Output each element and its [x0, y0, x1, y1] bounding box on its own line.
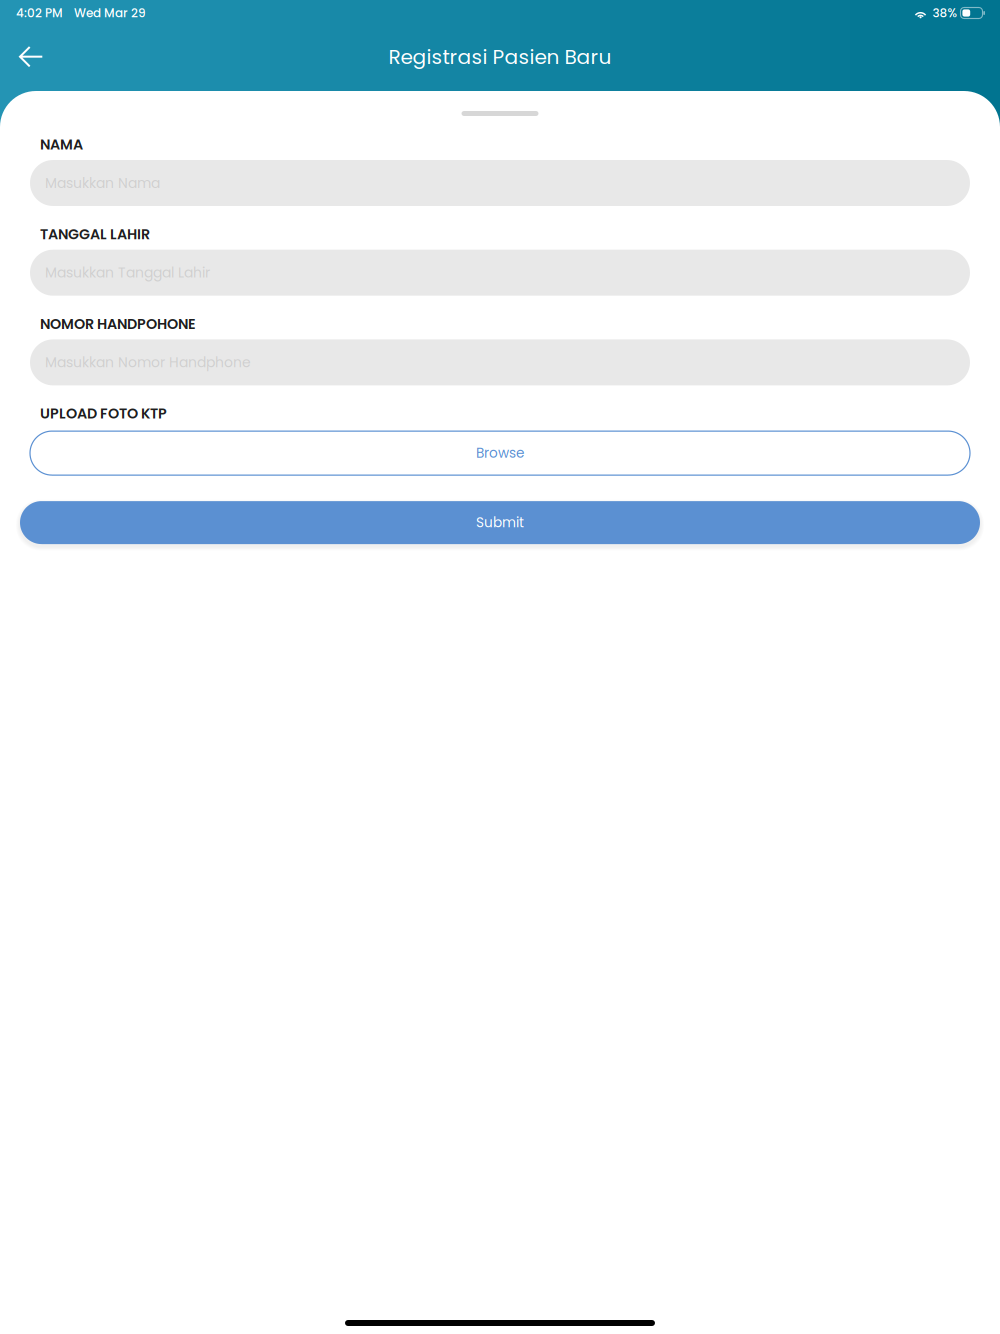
staticText: UPLOAD FOTO KTP [40, 404, 167, 424]
button[interactable]: Submit [20, 501, 980, 544]
staticText: Wed Mar 29 [74, 5, 146, 21]
staticText: NOMOR HANDPOHONE [40, 314, 196, 334]
staticText: Masukkan Nama [45, 173, 160, 193]
button[interactable]: Browse [30, 431, 970, 475]
staticText: Masukkan Nomor Handphone [45, 353, 251, 372]
staticText: Submit [476, 513, 524, 532]
staticText: Browse [476, 444, 524, 463]
staticText: 38% [932, 5, 957, 21]
staticText: TANGGAL LAHIR [40, 224, 150, 244]
button[interactable]: Back [0, 37, 57, 77]
staticText: NAMA [40, 134, 83, 154]
staticText: Registrasi Pasien Baru [388, 43, 611, 71]
staticText: Masukkan Tanggal Lahir [45, 263, 210, 282]
staticText: 4:02 PM [16, 5, 63, 21]
